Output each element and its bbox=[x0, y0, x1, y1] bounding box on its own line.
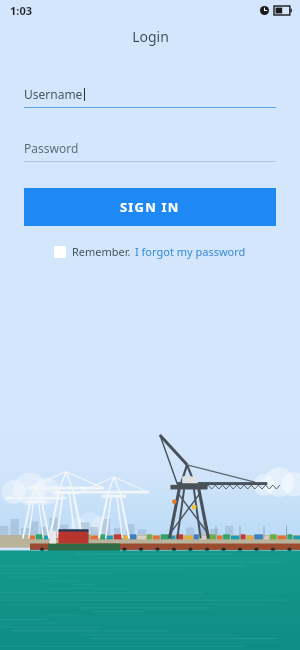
staticText: Username bbox=[24, 86, 83, 102]
staticText: SIGN IN bbox=[120, 198, 180, 216]
button[interactable]: Remember. bbox=[72, 244, 131, 259]
staticText: Password bbox=[24, 140, 79, 156]
button[interactable]: I forgot my password bbox=[135, 244, 246, 259]
button[interactable]: SIGN IN bbox=[24, 188, 276, 226]
button[interactable]: Username bbox=[24, 86, 276, 108]
staticText: Login bbox=[132, 27, 169, 46]
button[interactable]: Password bbox=[24, 140, 276, 162]
staticText: 1:03 bbox=[10, 3, 32, 18]
